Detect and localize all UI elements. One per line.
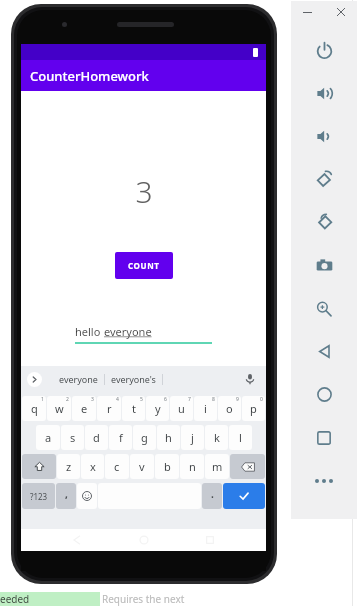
button[interactable]: x [81,454,104,479]
button[interactable]: Enter [223,483,265,509]
staticText: y [155,401,161,416]
staticText: b [164,459,171,474]
button[interactable]: t [122,396,145,421]
button[interactable]: q [22,396,46,421]
staticText: everyone [104,324,152,339]
staticText: eeded [0,592,30,606]
staticText: j [191,430,194,445]
button[interactable]: CounterHomework [21,60,266,91]
staticText: v [139,459,145,474]
staticText: 5 [140,396,143,403]
button[interactable]: a [36,425,60,450]
button[interactable]: Period [202,483,222,509]
staticText: c [114,459,120,474]
staticText: CounterHomework [30,67,149,85]
button[interactable]: p [242,396,265,421]
staticText: 7 [188,396,191,403]
button[interactable]: Zoom [291,287,357,330]
staticText: everyone's [111,373,156,385]
button[interactable]: d [85,425,108,450]
button[interactable]: z [57,454,80,479]
staticText: 1 [41,396,44,403]
staticText: m [212,459,223,474]
staticText: 3 [135,171,153,212]
staticText: f [119,430,123,445]
staticText: n [189,459,196,474]
button[interactable]: h [157,425,180,450]
button[interactable]: hello [75,324,212,344]
button[interactable]: More suggestions [27,372,42,387]
button[interactable]: Rotate left [291,158,357,201]
staticText: Requires the next [102,592,185,606]
staticText: a [45,430,52,445]
button[interactable]: y [146,396,169,421]
button[interactable]: Voice input [240,369,260,389]
staticText: COUNT [128,260,160,271]
button[interactable]: Home [291,373,357,416]
button[interactable]: m [205,454,229,479]
button[interactable]: Power [291,29,357,72]
staticText: , [65,487,68,501]
staticText: 6 [164,396,167,403]
staticText: r [107,401,112,416]
staticText: k [214,430,220,445]
staticText: everyone [59,373,98,385]
staticText: s [70,430,76,445]
button[interactable]: everyone's [105,368,162,390]
staticText: u [178,401,185,416]
button[interactable]: b [155,454,179,479]
staticText: 9 [236,396,239,403]
staticText: 4 [116,396,119,403]
staticText: ?123 [30,491,48,502]
button[interactable]: s [61,425,84,450]
button[interactable]: More [291,459,357,502]
staticText: 2 [66,396,69,403]
button[interactable]: w [47,396,71,421]
staticText: w [55,401,64,416]
button[interactable]: j [181,425,204,450]
button[interactable]: c [105,454,129,479]
button[interactable]: u [170,396,193,421]
button[interactable]: COUNT [115,252,173,279]
button[interactable]: Screenshot [291,244,357,287]
staticText: hello [75,324,104,339]
button[interactable]: Minimize [298,3,316,21]
button[interactable]: everyone [52,368,104,390]
button[interactable]: g [133,425,156,450]
button[interactable]: Volume up [291,72,357,115]
button[interactable]: o [218,396,241,421]
button[interactable]: l [229,425,252,450]
button[interactable]: Rotate right [291,201,357,244]
button[interactable]: k [205,425,228,450]
button[interactable]: Volume down [291,115,357,158]
button[interactable]: v [130,454,154,479]
button[interactable]: i [194,396,217,421]
staticText: 0 [260,396,263,403]
button[interactable]: Close [332,3,350,21]
button[interactable]: e [72,396,96,421]
staticText: t [132,401,136,416]
button[interactable]: f [109,425,132,450]
staticText: h [165,430,172,445]
button[interactable]: ?123 [22,483,55,509]
button[interactable]: Emoji [77,483,97,509]
button[interactable]: Recents [199,532,221,548]
button[interactable]: Overview [291,416,357,459]
staticText: . [211,487,214,501]
staticText: 8 [212,396,215,403]
button[interactable]: r [97,396,121,421]
button[interactable]: Back [291,330,357,373]
staticText: i [204,401,207,416]
button[interactable]: Comma [56,483,76,509]
staticText: x [90,459,96,474]
button[interactable]: n [180,454,204,479]
staticText: q [31,401,38,416]
staticText: d [93,430,100,445]
staticText: l [239,430,242,445]
staticText: o [226,401,233,416]
button[interactable]: Shift [22,454,56,479]
button[interactable]: Backspace [230,454,265,479]
